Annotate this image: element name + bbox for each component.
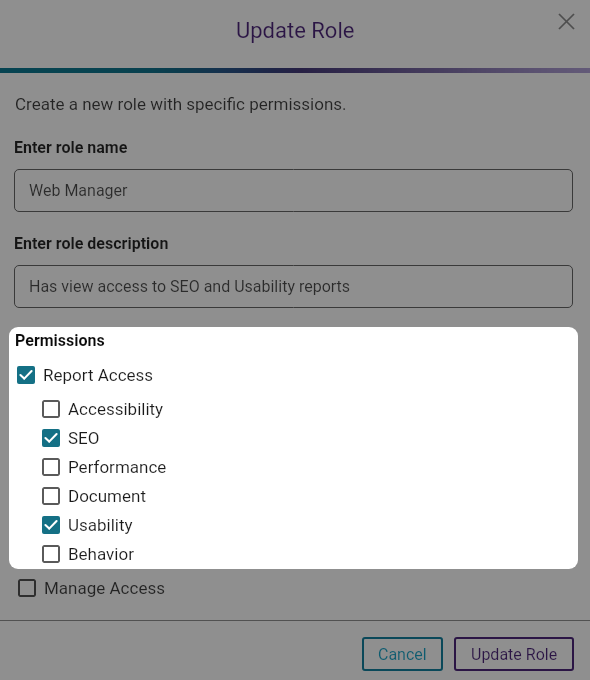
button[interactable]: SEO [9,423,578,452]
staticText: Enter role name [14,138,128,157]
button[interactable]: Usability [9,510,578,539]
staticText: Web Manager [29,181,128,200]
staticText: Update Role [236,18,355,44]
button[interactable]: Accessibility [9,394,578,423]
staticText: Report Access [43,365,154,385]
button[interactable]: Close [548,3,584,39]
button[interactable]: Report Access [9,360,578,389]
staticText: Document [68,486,146,506]
staticText: Performance [68,457,167,477]
staticText: Permissions [15,331,105,350]
button[interactable]: Update Role [454,637,574,671]
staticText: Has view access to SEO and Usability rep… [29,277,351,296]
button[interactable]: Web Manager [14,169,573,212]
staticText: Behavior [68,544,134,564]
button[interactable]: Document [9,481,578,510]
staticText: SEO [68,428,100,448]
staticText: Accessibility [68,399,164,419]
staticText: Cancel [378,645,427,664]
staticText: Update Role [471,645,558,664]
button[interactable]: Behavior [9,539,578,568]
staticText: Create a new role with specific permissi… [15,94,347,114]
staticText: Enter role description [14,234,169,253]
button[interactable]: Manage Access [0,573,590,602]
button[interactable]: Performance [9,452,578,481]
staticText: Manage Access [44,578,165,598]
staticText: Usability [68,515,133,535]
button[interactable]: Has view access to SEO and Usability rep… [14,265,573,308]
button[interactable]: Cancel [362,637,443,671]
